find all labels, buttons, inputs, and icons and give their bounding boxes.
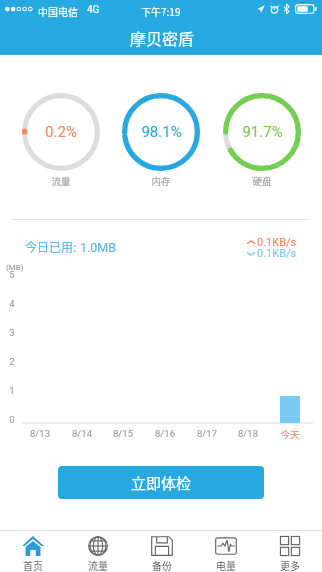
staticText: 8/18 — [238, 428, 258, 439]
staticText: 今天 — [280, 427, 300, 440]
staticText: 备份 — [152, 558, 172, 572]
staticText: 今日已用: — [25, 238, 77, 255]
button[interactable]: 立即体检 — [58, 466, 264, 499]
other: 电量 — [215, 536, 237, 556]
staticText: 流量 — [88, 558, 108, 572]
staticText: 0.1KB/s — [257, 247, 297, 260]
staticText: 91.7% — [242, 123, 283, 141]
staticText: 8/13 — [30, 428, 50, 439]
staticText: 首页 — [23, 558, 43, 572]
staticText: 内存 — [151, 174, 171, 188]
staticText: 3 — [9, 327, 15, 338]
staticText: 中国电信 — [38, 4, 78, 18]
staticText: 8/17 — [197, 428, 217, 439]
other: 备份 — [151, 536, 173, 556]
staticText: 电量 — [216, 558, 236, 572]
button[interactable]: 备份 — [130, 531, 194, 572]
staticText: 5 — [9, 269, 15, 280]
button[interactable]: 电量 — [194, 531, 258, 572]
staticText: 流量 — [51, 174, 71, 188]
staticText: 立即体检 — [131, 472, 192, 494]
staticText: 8/14 — [72, 428, 92, 439]
staticText: (MB) — [6, 263, 24, 272]
staticText: 8/16 — [155, 428, 175, 439]
staticText: 4G — [87, 4, 100, 16]
other: 流量 — [87, 536, 109, 556]
staticText: 1.0MB — [80, 240, 117, 255]
staticText: 更多 — [280, 558, 300, 572]
other: 首页 — [22, 536, 44, 556]
staticText: 2 — [9, 356, 15, 367]
button[interactable]: 流量 — [65, 531, 130, 572]
button[interactable]: 更多 — [258, 531, 322, 572]
staticText: 下午7:19 — [141, 4, 181, 18]
staticText: 98.1% — [141, 123, 182, 141]
staticText: 0.2% — [45, 123, 77, 141]
staticText: 8/15 — [113, 428, 133, 439]
staticText: 摩贝密盾 — [130, 26, 195, 49]
staticText: 0.1KB/s — [257, 236, 297, 249]
other: 更多 — [279, 536, 301, 556]
button[interactable]: 首页 — [0, 531, 65, 572]
staticText: 1 — [9, 385, 15, 396]
staticText: 0 — [9, 414, 15, 425]
staticText: 4 — [9, 298, 15, 309]
staticText: 硬盘 — [252, 174, 272, 188]
